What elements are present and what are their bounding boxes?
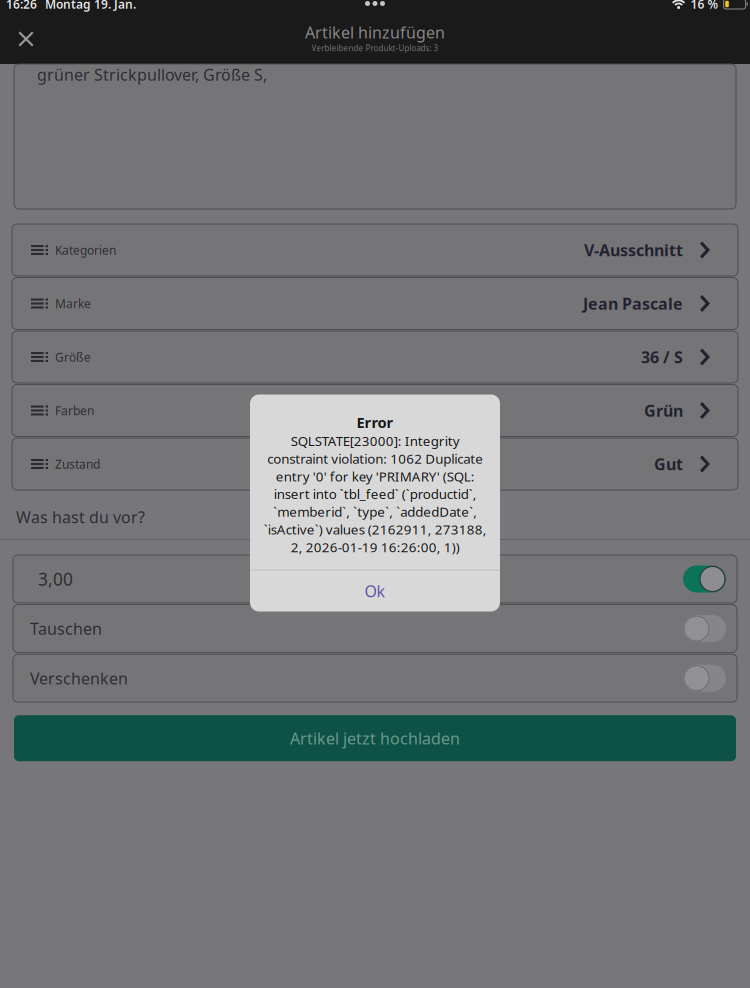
staticText: Tauschen	[30, 618, 102, 639]
button[interactable]: Artikel jetzt hochladen	[14, 715, 736, 761]
button[interactable]: Marke	[12, 277, 738, 329]
staticText: Marke	[55, 295, 91, 311]
staticText: Grün	[644, 400, 683, 421]
staticText: Gut	[654, 453, 683, 475]
staticText: Verschenken	[30, 668, 128, 689]
button[interactable]: Größe	[12, 331, 738, 383]
staticText: Jean Pascale	[583, 293, 683, 314]
staticText: Ok	[364, 580, 385, 602]
staticText: Artikel jetzt hochladen	[290, 728, 460, 749]
staticText: grüner Strickpullover, Größe S,	[37, 64, 267, 85]
button[interactable]: Zustand	[12, 438, 738, 490]
staticText: Farben	[55, 402, 94, 418]
staticText: Verbleibende Produkt-Uploads: 3	[311, 43, 438, 53]
staticText: SQLSTATE[23000]: Integrity constraint vi…	[263, 432, 486, 556]
button[interactable]: Farben	[12, 384, 738, 436]
staticText: 36 / S	[641, 346, 683, 368]
staticText: Was hast du vor?	[16, 506, 145, 528]
button[interactable]: Tauschen	[13, 605, 737, 653]
staticText: Error	[356, 412, 393, 432]
button[interactable]: Verschenken	[13, 654, 737, 702]
staticText: Größe	[55, 349, 91, 365]
staticText: Artikel hinzufügen	[305, 22, 445, 43]
staticText: 16 %	[691, 0, 719, 12]
staticText: Kategorien	[55, 242, 116, 258]
staticText: 16:26	[6, 0, 37, 12]
staticText: Zustand	[55, 456, 100, 472]
staticText: V-Ausschnitt	[584, 239, 683, 261]
staticText: 3,00	[38, 567, 73, 590]
button[interactable]: 3,00	[13, 555, 737, 603]
staticText: Montag 19. Jan.	[45, 0, 136, 12]
button[interactable]: Kategorien	[12, 224, 738, 276]
button[interactable]: Ok	[250, 570, 500, 611]
button[interactable]: Schließen	[0, 14, 52, 64]
